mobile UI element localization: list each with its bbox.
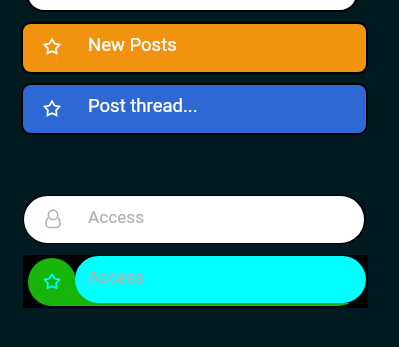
staticText: Access (88, 207, 145, 227)
staticText: New Posts (88, 34, 177, 56)
button[interactable]: Favourite (28, 0, 356, 10)
button[interactable]: Access (23, 256, 366, 305)
staticText: Access (88, 267, 145, 287)
button[interactable]: New Posts (23, 24, 366, 72)
staticText: Post thread... (88, 95, 198, 117)
button[interactable]: Post thread... (23, 85, 366, 133)
button[interactable]: Access (24, 196, 364, 243)
